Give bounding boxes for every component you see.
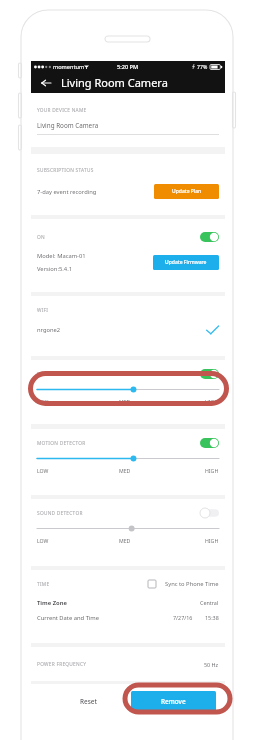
staticText: WIFI <box>37 307 49 314</box>
staticText: Sync to Phone Time <box>165 580 219 588</box>
staticText: LOW <box>37 537 49 544</box>
staticText: Remove <box>161 697 186 706</box>
staticText: MED <box>119 398 131 405</box>
staticText: TIME <box>37 581 50 588</box>
button[interactable]: Reset <box>65 691 111 712</box>
staticText: MED <box>119 537 131 544</box>
staticText: Update Firmware <box>165 259 207 266</box>
button[interactable]: Back <box>34 72 58 93</box>
staticText: 77% <box>197 63 208 70</box>
staticText: Version:5.4.1 <box>37 265 72 273</box>
button[interactable]: Toggle <box>200 232 219 242</box>
staticText: 7-day event recording <box>37 188 97 196</box>
staticText: MOTION DETECTOR <box>37 440 86 447</box>
staticText: HIGH <box>205 398 219 405</box>
staticText: Living Room Camera <box>37 121 99 130</box>
staticText: momentum <box>53 63 85 71</box>
staticText: LOW <box>37 398 49 405</box>
staticText: SUBSCRIPTION STATUS <box>37 167 94 174</box>
staticText: Central <box>200 599 219 606</box>
button[interactable]: Update Plan <box>154 184 219 199</box>
button[interactable]: Toggle <box>200 369 219 379</box>
staticText: NIGHT VISION <box>37 371 73 378</box>
staticText: Update Plan <box>172 188 202 195</box>
button[interactable]: Sensitivity <box>37 385 219 394</box>
staticText: 15:38 <box>205 614 219 621</box>
staticText: Current Date and Time <box>37 614 100 622</box>
button[interactable]: Toggle <box>200 438 219 448</box>
staticText: HIGH <box>205 467 219 474</box>
staticText: 50 Hz <box>204 661 219 668</box>
staticText: Living Room Camera <box>61 75 168 90</box>
button[interactable]: Sync to Phone Time <box>148 580 219 588</box>
staticText: POWER FREQUENCY <box>37 661 87 668</box>
button[interactable]: Sensitivity <box>37 454 219 463</box>
button[interactable]: Update Firmware <box>153 255 219 270</box>
staticText: HIGH <box>205 537 219 544</box>
staticText: 7/27/16 <box>173 614 193 621</box>
staticText: LOW <box>37 467 49 474</box>
staticText: MED <box>119 467 131 474</box>
button[interactable]: Toggle <box>200 508 219 518</box>
staticText: Time Zone <box>37 599 67 607</box>
staticText: YOUR DEVICE NAME <box>37 107 87 114</box>
button[interactable]: Sensitivity <box>37 524 219 533</box>
staticText: Reset <box>80 697 97 706</box>
staticText: 5:20 PM <box>117 63 139 71</box>
staticText: nrgone2 <box>37 326 61 334</box>
staticText: Model: Macam-01 <box>37 252 86 260</box>
staticText: ON <box>37 234 45 241</box>
button[interactable]: Remove <box>131 691 216 712</box>
button[interactable]: Connected <box>206 325 219 335</box>
staticText: SOUND DETECTOR <box>37 510 83 517</box>
